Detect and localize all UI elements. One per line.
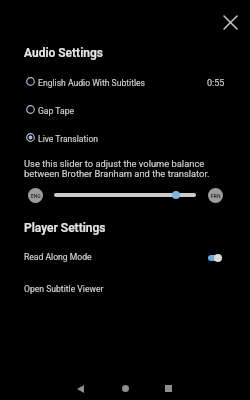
- staticText: ENG: [31, 193, 41, 199]
- staticText: Open Subtitle Viewer: [24, 284, 104, 294]
- button[interactable]: Open Subtitle Viewer: [0, 280, 250, 298]
- button[interactable]: Home: [102, 375, 147, 400]
- staticText: 0:55: [207, 78, 225, 89]
- staticText: Audio Settings: [24, 46, 103, 60]
- button[interactable]: Read Along Mode: [0, 248, 250, 266]
- staticText: English Audio With Subtitles: [38, 78, 146, 88]
- button[interactable]: Live Translation: [0, 130, 250, 146]
- button[interactable]: Gap Tape: [0, 102, 250, 118]
- button[interactable]: Back: [58, 375, 103, 400]
- button[interactable]: Language balance slider: [24, 186, 226, 204]
- staticText: Player Settings: [24, 221, 106, 235]
- staticText: Live Translation: [38, 134, 99, 144]
- staticText: Read Along Mode: [24, 252, 92, 262]
- staticText: Use this slider to adjust the volume bal…: [24, 158, 212, 179]
- button[interactable]: Recent apps: [146, 375, 191, 400]
- staticText: Gap Tape: [38, 106, 75, 116]
- staticText: FRN: [211, 193, 221, 199]
- button[interactable]: Close: [219, 11, 242, 34]
- button[interactable]: English Audio With Subtitles: [0, 74, 250, 90]
